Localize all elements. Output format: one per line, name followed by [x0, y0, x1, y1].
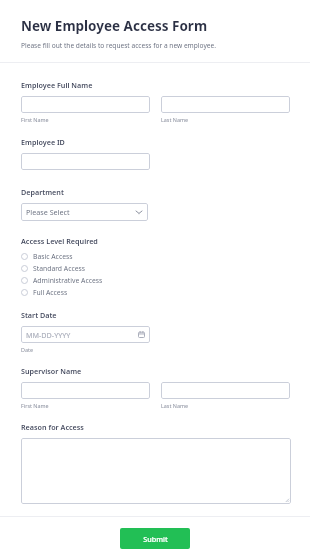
- button[interactable]: Administrative Access: [21, 274, 291, 286]
- button[interactable]: Start date input: [21, 326, 150, 343]
- staticText: Employee ID: [21, 137, 65, 147]
- staticText: Please Select: [26, 207, 70, 217]
- staticText: First Name: [21, 402, 49, 409]
- button[interactable]: Submit: [120, 528, 190, 549]
- staticText: Last Name: [161, 402, 188, 409]
- button[interactable]: First name input: [21, 96, 150, 113]
- staticText: Reason for Access: [21, 422, 84, 432]
- staticText: Standard Access: [33, 264, 86, 273]
- button[interactable]: Last name input: [161, 382, 290, 399]
- button[interactable]: Reason for access text area: [21, 438, 291, 504]
- staticText: Start Date: [21, 310, 57, 320]
- staticText: Submit: [143, 534, 168, 544]
- staticText: Last Name: [161, 116, 188, 123]
- staticText: Employee Full Name: [21, 80, 93, 90]
- staticText: New Employee Access Form: [21, 17, 208, 35]
- button[interactable]: Basic Access: [21, 250, 291, 262]
- button[interactable]: Department dropdown: [21, 203, 148, 221]
- staticText: MM-DD-YYYY: [26, 330, 71, 340]
- staticText: Date: [21, 346, 33, 353]
- staticText: Administrative Access: [33, 276, 103, 285]
- staticText: Please fill out the details to request a…: [21, 41, 216, 50]
- staticText: Access Level Required: [21, 236, 98, 246]
- button[interactable]: Last name input: [161, 96, 290, 113]
- staticText: Department: [21, 187, 64, 197]
- button[interactable]: Standard Access: [21, 262, 291, 274]
- button[interactable]: Employee ID input: [21, 153, 150, 170]
- staticText: Supervisor Name: [21, 366, 82, 376]
- button[interactable]: First name input: [21, 382, 150, 399]
- staticText: First Name: [21, 116, 49, 123]
- staticText: Basic Access: [33, 252, 73, 261]
- button[interactable]: Full Access: [21, 286, 291, 298]
- staticText: Full Access: [33, 288, 68, 297]
